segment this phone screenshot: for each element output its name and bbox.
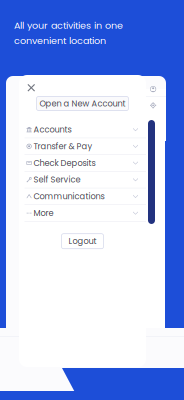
button[interactable]: Logout bbox=[61, 234, 103, 249]
button[interactable]: Close bbox=[23, 80, 39, 95]
button[interactable]: Transfer & Pay bbox=[19, 138, 146, 155]
staticText: Open a New Account bbox=[39, 98, 125, 109]
staticText: All your activities in one bbox=[14, 19, 123, 32]
button[interactable]: Accounts bbox=[19, 121, 146, 138]
button[interactable]: Communications bbox=[19, 188, 146, 205]
button[interactable]: Self Service bbox=[19, 172, 146, 188]
button[interactable]: Check Deposits bbox=[19, 155, 146, 172]
staticText: More bbox=[33, 207, 53, 219]
button[interactable]: More bbox=[19, 205, 146, 222]
button[interactable]: Open a New Account bbox=[36, 96, 128, 110]
staticText: Check Deposits bbox=[33, 157, 95, 169]
staticText: Communications bbox=[33, 191, 104, 202]
staticText: Logout bbox=[68, 235, 96, 247]
staticText: Self Service bbox=[33, 174, 80, 185]
staticText: Transfer & Pay bbox=[33, 140, 92, 152]
staticText: Accounts bbox=[33, 124, 71, 135]
staticText: convenient location bbox=[14, 34, 106, 47]
